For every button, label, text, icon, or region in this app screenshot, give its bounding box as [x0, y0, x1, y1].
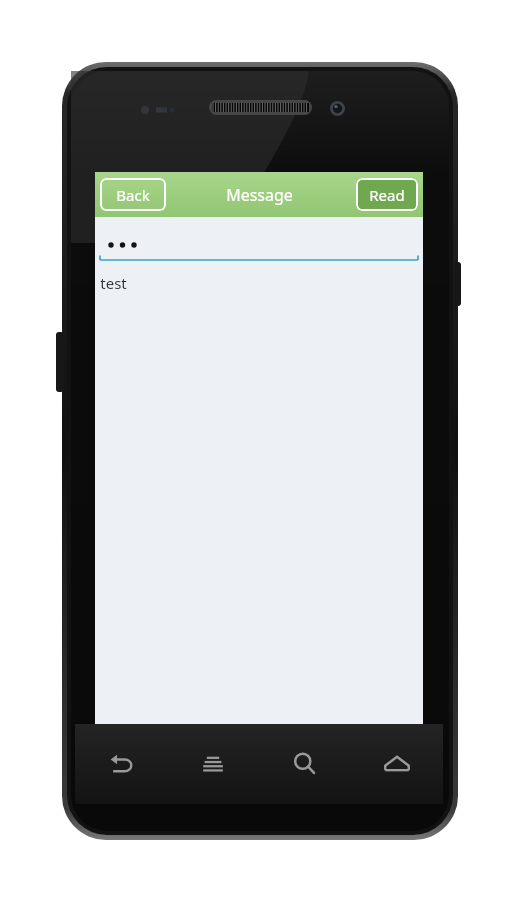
button[interactable]: Home [351, 724, 443, 804]
button[interactable]: Menu [167, 724, 259, 804]
button[interactable] [95, 217, 423, 267]
button[interactable]: Back [75, 724, 167, 804]
button[interactable]: Back [100, 178, 166, 211]
staticText: test [100, 273, 127, 293]
button[interactable]: Read [356, 178, 418, 211]
button[interactable]: Search [259, 724, 351, 804]
staticText: Back [116, 185, 150, 205]
staticText: Message [226, 184, 293, 206]
staticText: Read [369, 185, 405, 205]
